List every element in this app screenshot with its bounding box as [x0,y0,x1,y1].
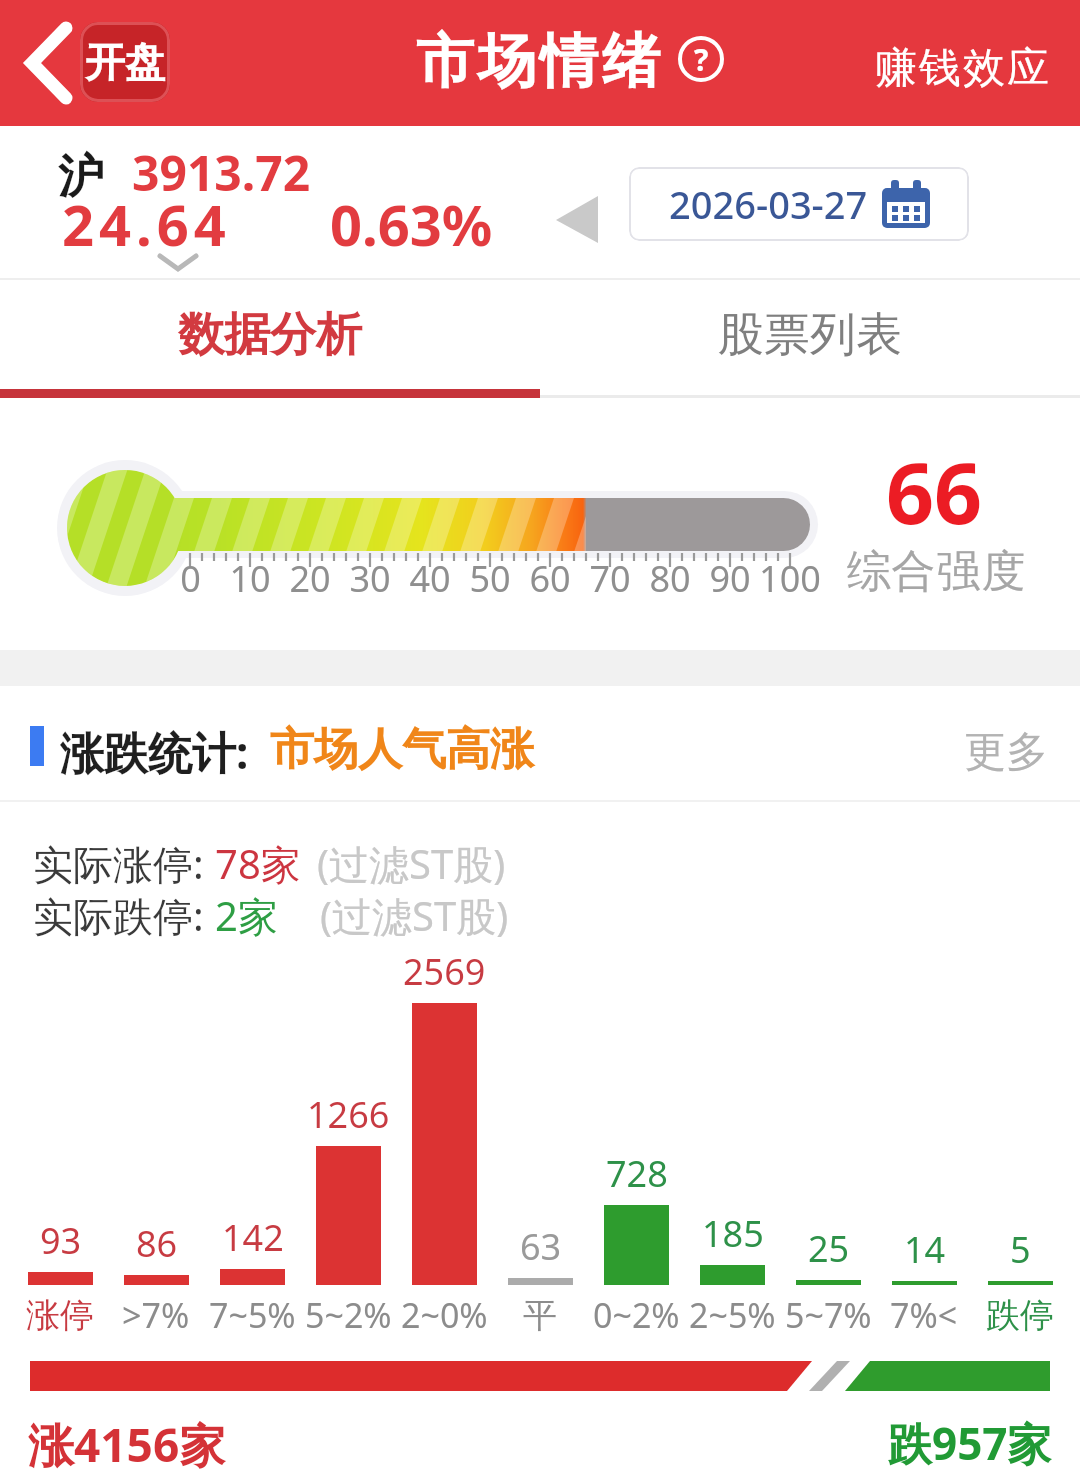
staticText: 185 [702,1209,764,1258]
button[interactable]: ? [678,36,724,82]
staticText: 2~0% [401,1292,488,1338]
staticText: 5~2% [305,1292,392,1338]
button[interactable]: 更多 [0,686,84,739]
staticText: 2家 [215,888,278,943]
button[interactable]: 赚钱效应 [0,0,176,53]
staticText: 728 [606,1149,668,1198]
staticText: 40 [409,554,451,603]
staticText: 市场人气高涨 [270,722,534,777]
staticText: 1266 [307,1090,390,1139]
staticText: 20 [289,554,331,603]
staticText: 66 [886,434,983,548]
staticText: 90 [709,554,751,603]
staticText: 涨4156家 [28,1413,226,1476]
staticText: 股票列表 [718,306,902,364]
staticText: 70 [589,554,631,603]
button[interactable] [14,14,84,112]
staticText: 跌停 [986,1294,1054,1337]
staticText: 3913.72 [132,140,311,205]
staticText: 60 [529,554,571,603]
staticText: 平 [523,1294,557,1337]
staticText: 100 [759,554,821,603]
staticText: 78家 [215,836,301,891]
staticText: (过滤ST股) [320,888,509,943]
staticText: 2026-03-27 [669,178,868,230]
button[interactable]: 股票列表 [540,280,1080,389]
staticText: ? [694,39,709,80]
staticText: 7%< [890,1292,958,1338]
staticText: 24.64 [62,186,231,262]
staticText: 93 [40,1216,82,1265]
staticText: 63 [520,1222,562,1271]
staticText: 跌957家 [888,1413,1052,1473]
staticText: 30 [349,554,391,603]
button[interactable] [554,196,600,244]
staticText: 2569 [403,947,486,996]
staticText: 市场情绪 [414,25,662,98]
staticText: 实际涨停: [33,836,215,891]
staticText: 86 [136,1219,178,1268]
staticText: 涨跌统计: [60,722,249,782]
staticText: 142 [222,1213,284,1262]
staticText: >7% [122,1292,190,1338]
staticText: 沪 [58,148,104,206]
staticText: 综合强度 [846,544,1026,599]
staticText: 实际跌停: [33,888,215,943]
button[interactable]: 开盘 [80,22,170,102]
staticText: 5 [1010,1225,1031,1274]
staticText: 涨停 [26,1294,94,1337]
staticText: 0~2% [593,1292,680,1338]
staticText: 14 [904,1225,946,1274]
staticText: 2~5% [689,1292,776,1338]
staticText: 0 [180,554,201,603]
staticText: 50 [469,554,511,603]
staticText: 5~7% [785,1292,872,1338]
staticText: 数据分析 [178,306,362,364]
staticText: 25 [808,1224,850,1273]
staticText: 7~5% [209,1292,296,1338]
staticText: 10 [229,554,271,603]
staticText: 开盘 [85,37,165,87]
button[interactable]: 2026-03-27 [629,167,969,241]
staticText: 80 [649,554,691,603]
staticText: (过滤ST股) [317,836,506,891]
staticText: 0.63% [330,186,493,262]
button[interactable]: 数据分析 [0,280,540,389]
